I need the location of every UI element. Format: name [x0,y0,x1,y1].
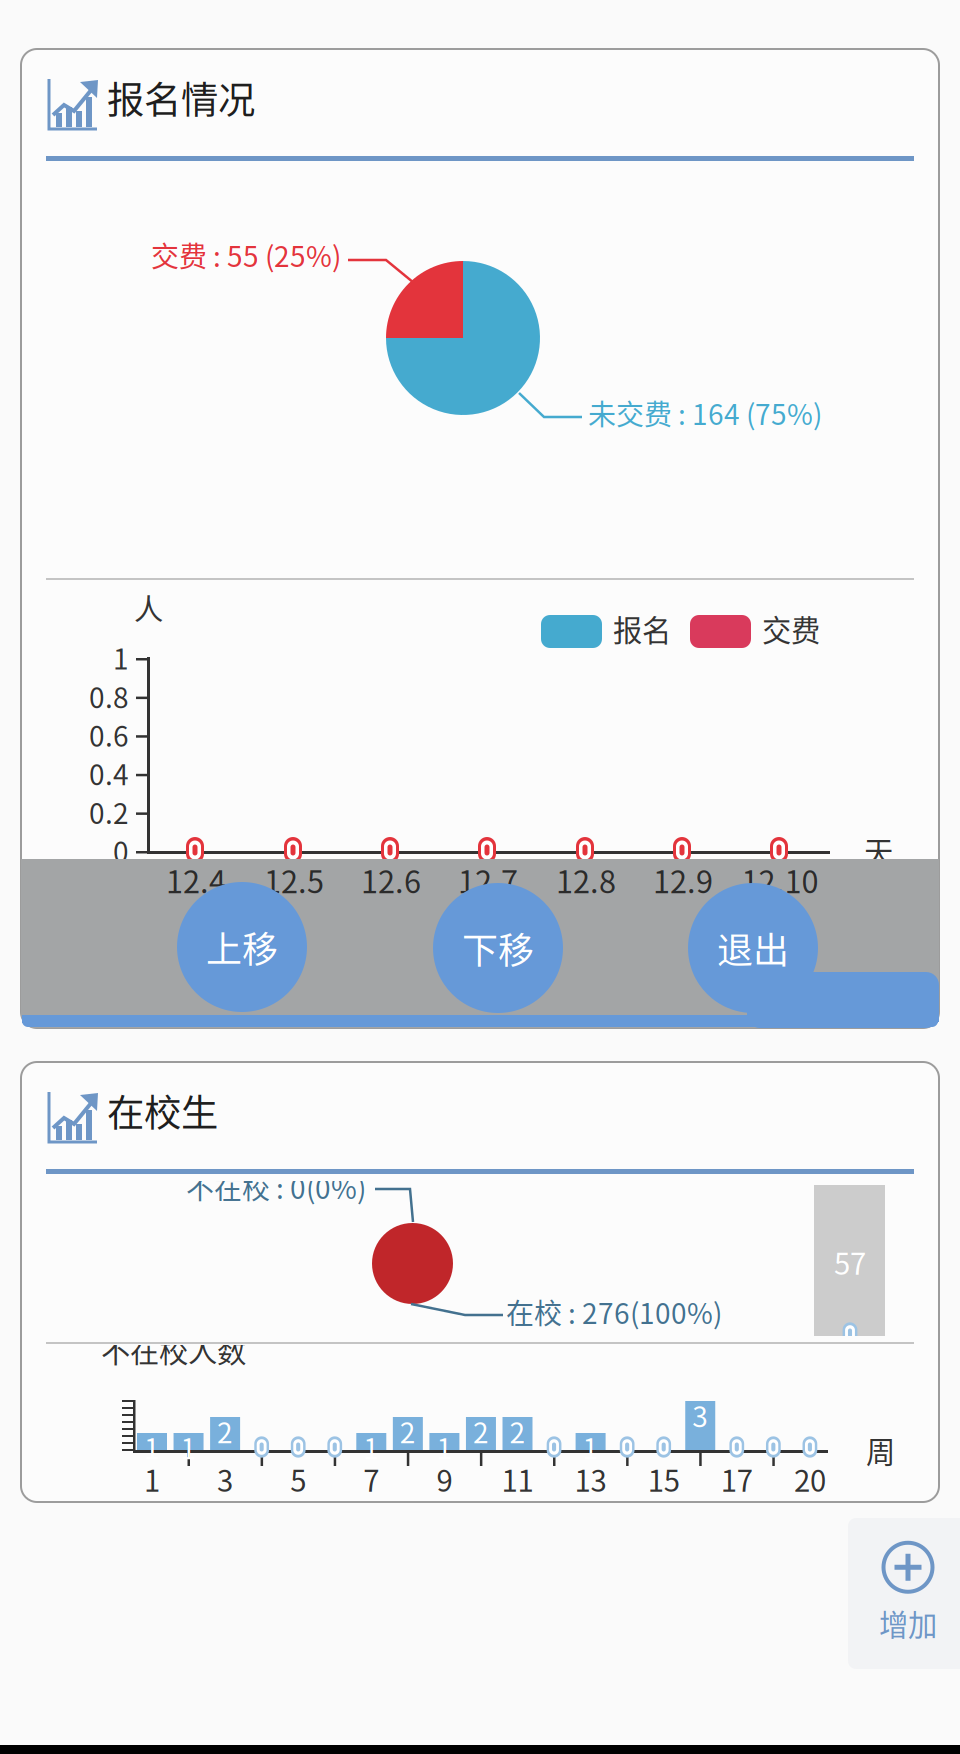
staticText: 1 [113,637,129,678]
staticText: 退出 [717,922,789,974]
staticText: 12.8 [556,858,616,902]
staticText: 12.4 [166,858,226,902]
staticText: 2 [509,1411,525,1451]
staticText: 2 [400,1411,416,1451]
staticText: 未交费 : 164 (75%) [588,393,822,433]
staticText: 报名情况 [107,70,255,124]
staticText: 增加 [879,1602,937,1644]
staticText: 2 [217,1411,233,1451]
button[interactable]: 增加 [848,1518,960,1669]
staticText: 交费 [762,607,820,650]
staticText: 报名 [613,607,671,650]
staticText: 57 [834,1241,866,1283]
staticText: 12.9 [653,858,713,902]
staticText: 15 [648,1458,680,1500]
staticText: 1 [144,1427,160,1467]
staticText: 0 [113,830,129,871]
staticText: 12.7 [458,858,518,902]
staticText: 12.6 [361,858,421,902]
staticText: 0.8 [89,676,129,716]
staticText: 不在校 : 0(0%) [186,1166,366,1207]
staticText: 3 [217,1458,233,1500]
staticText: 上移 [206,921,278,973]
staticText: 0.2 [89,791,129,832]
staticText: 天 [864,829,893,871]
staticText: 交费 : 55 (25%) [151,235,341,275]
staticText: 12.5 [264,858,324,902]
staticText: 13 [575,1458,607,1500]
staticText: 1 [144,1458,160,1500]
staticText: 0.4 [89,753,129,793]
staticText: 1 [436,1427,452,1467]
staticText: 20 [794,1458,826,1500]
staticText: 不在校人数 [101,1328,246,1371]
staticText: 17 [721,1458,753,1500]
button[interactable]: 上移 [177,882,307,1012]
staticText: 下移 [462,922,534,974]
staticText: 1 [583,1427,599,1467]
staticText: 1 [363,1427,379,1467]
staticText: 在校生 [107,1083,218,1137]
staticText: 在校 : 276(100%) [506,1291,722,1332]
button[interactable]: 下移 [433,883,563,1013]
staticText: 11 [501,1458,533,1500]
staticText: 9 [436,1458,452,1500]
staticText: 2 [473,1411,489,1451]
staticText: 1 [181,1427,197,1467]
button[interactable]: 退出 [688,883,818,1013]
staticText: 3 [692,1395,708,1435]
staticText: 周 [866,1429,895,1471]
staticText: 人 [134,586,163,628]
staticText: 7 [363,1458,379,1500]
staticText: 12.10 [741,858,818,902]
staticText: 0.6 [89,714,129,755]
staticText: 5 [290,1458,306,1500]
